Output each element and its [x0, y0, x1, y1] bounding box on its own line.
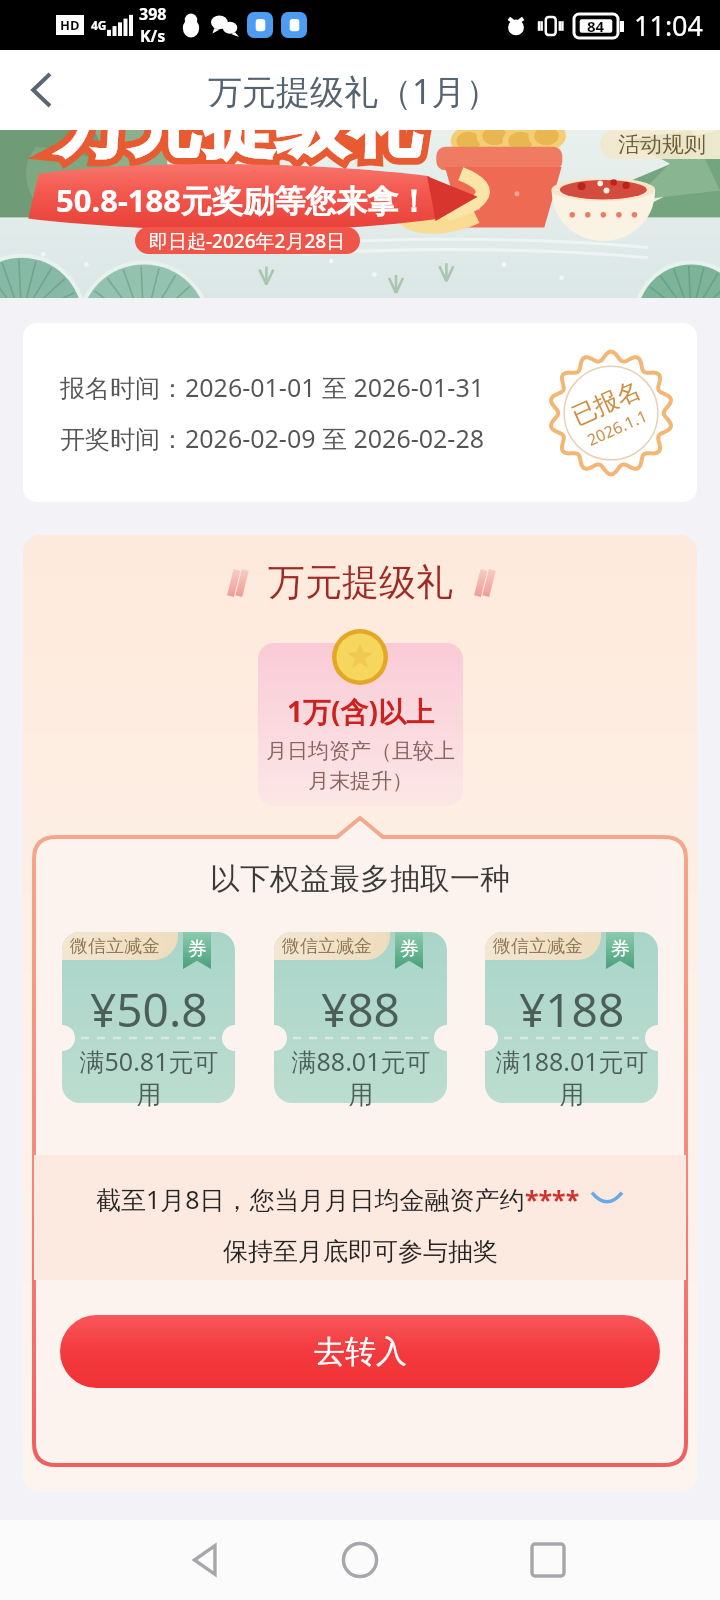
staticText: 万元提级礼 — [268, 559, 453, 606]
staticText: 微信立减金 — [70, 935, 160, 958]
staticText: 活动规则 — [618, 131, 706, 159]
staticText: 满88.01元可用 — [282, 1044, 440, 1110]
staticText: 11:04 — [634, 7, 704, 44]
staticText: 50.8-188元奖励等您来拿！ — [56, 179, 430, 221]
button[interactable]: 去转入 — [60, 1315, 660, 1388]
staticText: 以下权益最多抽取一种 — [210, 860, 510, 898]
staticText: K/s — [140, 25, 166, 47]
staticText: 开奖时间：2026-02-09 至 2026-02-28 — [60, 421, 485, 455]
staticText: 84 — [587, 16, 605, 36]
staticText: 月日均资产（且较上月末提升） — [266, 738, 455, 795]
staticText: 券 — [188, 937, 207, 961]
staticText: 1万(含)以上 — [287, 692, 435, 730]
staticText: 券 — [611, 937, 630, 961]
button[interactable]: Recents — [512, 1524, 584, 1596]
button[interactable]: Back — [170, 1524, 242, 1596]
button[interactable]: 微信立减金 — [274, 932, 447, 1103]
staticText: ¥50.8 — [90, 978, 208, 1041]
staticText: 截至1月8日，您当月月日均金融资产约 — [96, 1182, 525, 1216]
staticText: 万元提级礼（1月） — [208, 68, 500, 114]
staticText: 券 — [400, 937, 419, 961]
staticText: 398 — [139, 3, 167, 25]
staticText: 万元提级礼 — [56, 130, 421, 171]
staticText: 已报名 — [567, 375, 645, 431]
staticText: **** — [525, 1182, 580, 1216]
staticText: 即日起-2026年2月28日 — [149, 228, 346, 254]
staticText: 满188.01元可用 — [493, 1044, 651, 1110]
staticText: 万元提级礼 — [56, 130, 421, 171]
staticText: ¥188 — [519, 978, 625, 1041]
staticText: 满50.81元可用 — [70, 1044, 228, 1110]
button[interactable]: 微信立减金 — [62, 932, 235, 1103]
button[interactable]: Back — [16, 64, 68, 116]
staticText: 去转入 — [314, 1332, 407, 1371]
staticText: 微信立减金 — [282, 935, 372, 958]
staticText: 保持至月底即可参与抽奖 — [223, 1236, 498, 1267]
staticText: 4G — [91, 17, 107, 33]
staticText: 微信立减金 — [493, 935, 583, 958]
button[interactable]: Home — [324, 1524, 396, 1596]
button[interactable]: Show amount — [590, 1186, 624, 1212]
button[interactable]: 活动规则 — [600, 130, 720, 159]
staticText: ¥88 — [321, 978, 400, 1041]
staticText: HD — [60, 16, 80, 34]
button[interactable]: 微信立减金 — [485, 932, 658, 1103]
staticText: 2026.1.1 — [584, 405, 651, 451]
staticText: 报名时间：2026-01-01 至 2026-01-31 — [60, 370, 485, 404]
